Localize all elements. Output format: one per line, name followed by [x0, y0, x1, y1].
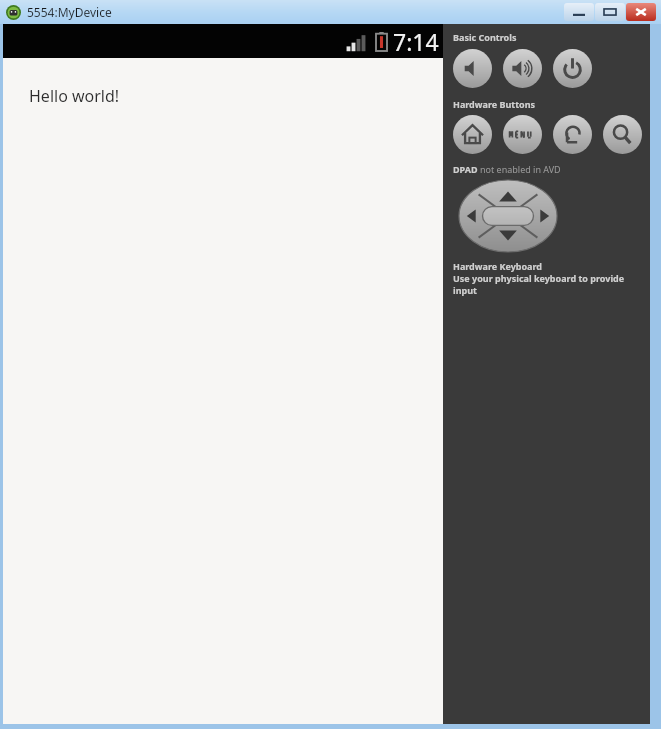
button[interactable]: Back — [553, 115, 592, 154]
staticText: 5554:MyDevice — [27, 4, 112, 20]
button[interactable]: Volume down — [453, 49, 492, 88]
staticText: DPAD — [453, 163, 480, 175]
button[interactable]: Search — [603, 115, 642, 154]
staticText: Use your physical keyboard to provide in… — [453, 272, 650, 296]
staticText: Hardware Keyboard — [453, 260, 543, 272]
button[interactable]: Home — [453, 115, 492, 154]
staticText: 7:14 — [393, 26, 439, 57]
staticText: Basic Controls — [453, 31, 517, 43]
button[interactable]: Menu — [503, 115, 542, 154]
staticText: Hardware Buttons — [453, 98, 536, 110]
staticText: Hello world! — [29, 85, 120, 107]
button[interactable]: Window — [595, 3, 625, 21]
button[interactable]: Power — [553, 49, 592, 88]
staticText: not enabled in AVD — [480, 163, 561, 175]
button[interactable]: Close — [626, 3, 656, 21]
button[interactable]: D-pad — [459, 180, 557, 252]
button[interactable]: Window — [564, 3, 594, 21]
button[interactable]: Volume up — [503, 49, 542, 88]
